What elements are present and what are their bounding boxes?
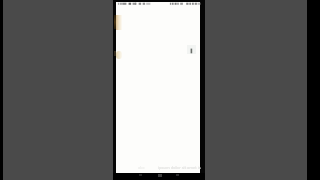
staticText: ipsum dolor sit amet is (158, 165, 201, 170)
button[interactable]: Avatar (116, 51, 122, 59)
button[interactable]: Menu (116, 15, 122, 30)
staticText: abc (138, 165, 145, 170)
